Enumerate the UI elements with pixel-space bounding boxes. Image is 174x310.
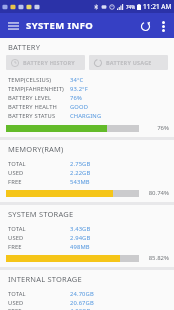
staticText: FREE (8, 307, 70, 310)
staticText: 543MB (70, 178, 90, 186)
staticText: 20.67GB (70, 299, 94, 307)
staticText: BATTERY (8, 42, 41, 52)
staticText: 3.43GB (70, 225, 91, 233)
staticText: TOTAL (8, 160, 70, 168)
staticText: FREE (8, 243, 70, 251)
staticText: 85.82% (142, 254, 169, 262)
staticText: USED (8, 299, 70, 307)
staticText: BATTERY STATUS (8, 112, 70, 120)
staticText: SYSTEM INFO (26, 19, 94, 32)
staticText: BATTERY HISTORY (23, 59, 75, 66)
staticText: 11:21 AM (143, 2, 172, 11)
button[interactable]: Refresh (135, 16, 155, 36)
staticText: 4.02GB (70, 307, 91, 310)
staticText: USED (8, 169, 70, 177)
staticText: 93.2°F (70, 85, 88, 93)
staticText: TEMP(FAHRENHEIT) (8, 85, 70, 93)
staticText: INTERNAL STORAGE (8, 274, 82, 284)
staticText: BATTERY HEALTH (8, 103, 70, 111)
button[interactable]: BATTERY HISTORY (6, 55, 85, 70)
staticText: BATTERY LEVEL (8, 94, 70, 102)
staticText: MEMORY(RAM) (8, 144, 64, 154)
staticText: 80.74% (142, 189, 169, 197)
staticText: 24.70GB (70, 290, 94, 298)
staticText: GOOD (70, 103, 89, 111)
staticText: FREE (8, 178, 70, 186)
staticText: 498MB (70, 243, 90, 251)
staticText: 76% (70, 94, 82, 102)
staticText: SYSTEM STORAGE (8, 209, 74, 219)
staticText: USED (8, 234, 70, 242)
button[interactable]: More options (155, 18, 171, 34)
staticText: 74% (126, 4, 135, 10)
staticText: TOTAL (8, 225, 70, 233)
staticText: 34°C (70, 76, 84, 84)
button[interactable]: Open navigation drawer (4, 17, 22, 35)
staticText: 2.75GB (70, 160, 91, 168)
staticText: 76% (142, 124, 169, 132)
staticText: BATTERY USAGE (106, 59, 152, 66)
button[interactable]: BATTERY USAGE (89, 55, 168, 70)
staticText: TOTAL (8, 290, 70, 298)
staticText: 2.94GB (70, 234, 91, 242)
staticText: TEMP(CELSIUS) (8, 76, 70, 84)
staticText: 2.22GB (70, 169, 91, 177)
staticText: CHARGING (70, 112, 102, 120)
